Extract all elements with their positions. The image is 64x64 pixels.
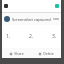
button[interactable]: Delete: [31, 51, 61, 56]
button[interactable]: Share: [2, 51, 31, 56]
staticText: Screenshot captured: [12, 17, 51, 22]
staticText: Delete: [43, 51, 54, 56]
staticText: 3.: [52, 33, 57, 40]
staticText: now: [53, 17, 59, 21]
staticText: 1.: [6, 33, 11, 40]
staticText: Share: [14, 51, 24, 56]
button[interactable]: App: [4, 4, 8, 8]
staticText: 2.: [29, 33, 34, 40]
button[interactable]: App: [55, 4, 59, 8]
